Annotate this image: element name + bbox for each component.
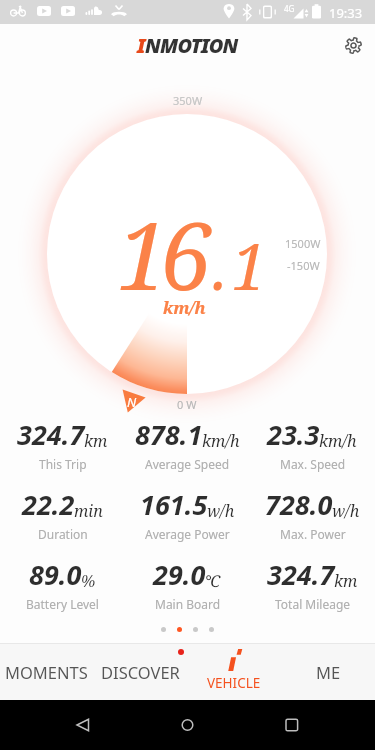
button[interactable]: DISCOVER [93, 643, 187, 700]
button[interactable]: 728.0 [250, 486, 375, 542]
staticText: 19:33 [329, 4, 363, 22]
staticText: 324.7 [17, 416, 85, 453]
staticText: VEHICLE [207, 674, 261, 692]
button[interactable]: 878.1 [125, 416, 250, 472]
staticText: Average Speed [145, 456, 230, 472]
staticText: 23.3 [267, 416, 320, 453]
button[interactable]: 89.0 [0, 556, 125, 612]
staticText: 22.2 [22, 486, 75, 523]
staticText: w/h [207, 500, 235, 522]
staticText: DISCOVER [101, 661, 180, 683]
button[interactable]: MOMENTS [0, 643, 93, 700]
staticText: km [84, 430, 108, 452]
staticText: Battery Level [26, 596, 99, 612]
staticText: km/h [202, 430, 240, 452]
staticText: 1500W [285, 236, 321, 251]
staticText: km/h [319, 430, 357, 452]
staticText: Main Board [155, 596, 221, 612]
staticText: 29.0 [153, 556, 206, 593]
staticText: Duration [38, 526, 88, 542]
staticText: ME [316, 661, 341, 683]
staticText: km/h [163, 296, 206, 319]
staticText: 350W [173, 93, 203, 108]
staticText: 4G [284, 3, 295, 14]
staticText: 16 [117, 191, 203, 318]
button[interactable]: 324.7 [0, 416, 125, 472]
staticText: min [74, 500, 103, 522]
staticText: This Trip [39, 456, 87, 472]
staticText: Total Mileage [275, 596, 351, 612]
button[interactable]: ME [281, 643, 375, 700]
button[interactable]: VEHICLE [187, 643, 281, 700]
staticText: 89.0 [29, 556, 82, 593]
staticText: % [81, 570, 96, 592]
staticText: w/h [332, 500, 360, 522]
staticText: 324.7 [267, 556, 335, 593]
staticText: NMOTION [145, 32, 238, 59]
button[interactable]: 161.5 [125, 486, 250, 542]
staticText: I [137, 32, 145, 59]
staticText: ℃ [205, 570, 221, 592]
staticText: km [334, 570, 358, 592]
staticText: Average Power [145, 526, 230, 542]
button[interactable]: Settings [333, 25, 373, 65]
button[interactable]: 29.0 [125, 556, 250, 612]
staticText: 728.0 [265, 486, 333, 523]
staticText: N [127, 393, 137, 411]
staticText: 0 W [177, 397, 197, 412]
button[interactable]: 324.7 [250, 556, 375, 612]
staticText: Max. Power [280, 526, 346, 542]
button[interactable]: 22.2 [0, 486, 125, 542]
staticText: -150W [287, 258, 320, 273]
staticText: MOMENTS [5, 661, 88, 683]
staticText: Max. Speed [280, 456, 346, 472]
button[interactable]: 23.3 [250, 416, 375, 472]
staticText: 878.1 [135, 416, 203, 453]
staticText: 161.5 [140, 486, 208, 523]
staticText: .1 [212, 223, 271, 309]
